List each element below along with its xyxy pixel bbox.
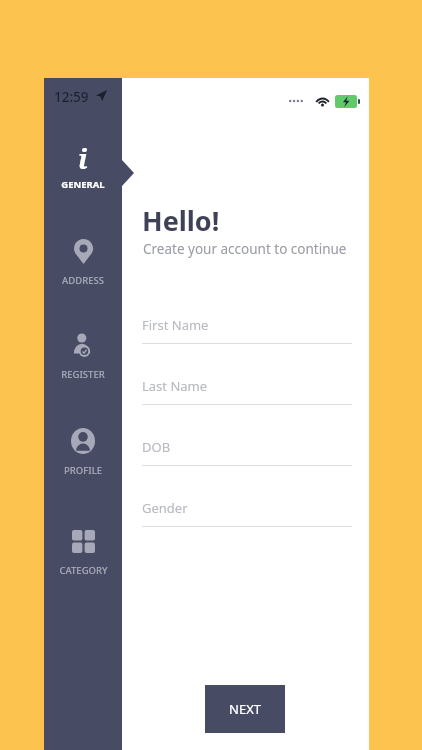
button[interactable]: Last Name: [142, 377, 352, 405]
button[interactable]: NEXT: [205, 685, 285, 733]
button[interactable]: GENERAL: [44, 140, 122, 191]
staticText: ADDRESS: [62, 274, 104, 287]
staticText: CATEGORY: [59, 564, 108, 577]
staticText: PROFILE: [64, 464, 102, 477]
staticText: Create your account to continue: [143, 240, 347, 258]
button[interactable]: CATEGORY: [44, 526, 122, 577]
button[interactable]: PROFILE: [44, 426, 122, 477]
button[interactable]: ADDRESS: [44, 236, 122, 287]
staticText: 12:59: [54, 88, 89, 106]
button[interactable]: DOB: [142, 438, 352, 466]
staticText: DOB: [142, 438, 171, 456]
staticText: Last Name: [142, 377, 208, 395]
staticText: GENERAL: [61, 178, 105, 191]
staticText: First Name: [142, 316, 209, 334]
staticText: NEXT: [229, 700, 261, 718]
staticText: REGISTER: [61, 368, 105, 381]
button[interactable]: Gender: [142, 499, 352, 527]
button[interactable]: REGISTER: [44, 330, 122, 381]
staticText: i: [78, 140, 88, 170]
staticText: Hello!: [142, 202, 220, 239]
button[interactable]: First Name: [142, 316, 352, 344]
staticText: Gender: [142, 499, 188, 517]
